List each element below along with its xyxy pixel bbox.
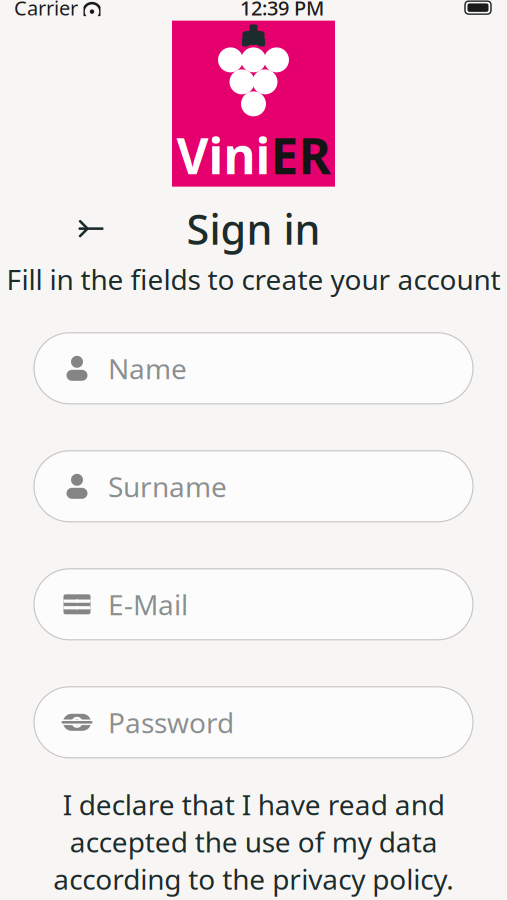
- staticText: Vini: [176, 122, 270, 188]
- staticText: Fill in the fields to create your accoun…: [6, 261, 500, 298]
- button[interactable]: Back: [68, 209, 114, 249]
- staticText: Carrier: [14, 0, 78, 21]
- staticText: Surname: [108, 468, 227, 505]
- staticText: Password: [108, 704, 234, 741]
- staticText: Sign in: [186, 201, 320, 256]
- staticText: E-Mail: [108, 586, 188, 623]
- staticText: I declare that I have read and accepted …: [53, 786, 454, 897]
- button[interactable]: E-Mail: [34, 569, 473, 640]
- button[interactable]: Name: [34, 333, 473, 404]
- staticText: 12:39 PM: [240, 0, 324, 21]
- button[interactable]: Password: [34, 687, 473, 758]
- button[interactable]: Surname: [34, 451, 473, 522]
- staticText: Name: [108, 350, 187, 387]
- staticText: ER: [270, 122, 330, 188]
